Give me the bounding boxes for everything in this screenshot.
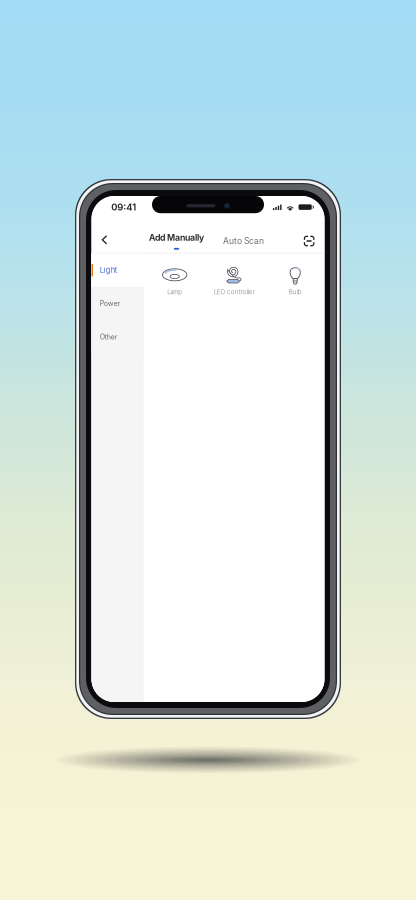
button[interactable]: Auto Scan <box>91 196 147 220</box>
button[interactable]: Lamp <box>91 196 151 240</box>
button[interactable]: Power <box>91 196 144 229</box>
button[interactable]: Back <box>91 196 113 218</box>
button[interactable]: Scan QR code <box>91 196 113 218</box>
staticText: Auto Scan <box>223 236 264 246</box>
staticText: Other <box>100 333 118 341</box>
staticText: Bulb <box>289 288 302 296</box>
button[interactable]: Other <box>91 196 144 229</box>
button[interactable]: LED controller <box>91 196 151 240</box>
staticText: LED controller <box>214 288 255 296</box>
staticText: Lamp <box>167 288 182 296</box>
button[interactable]: Bulb <box>91 196 151 242</box>
staticText: Light <box>100 266 117 275</box>
staticText: Add Manually <box>149 232 204 243</box>
button[interactable]: Light <box>91 196 144 229</box>
staticText: Power <box>100 299 121 308</box>
staticText: 09:41 <box>111 201 136 213</box>
button[interactable]: Add Manually <box>91 196 161 220</box>
